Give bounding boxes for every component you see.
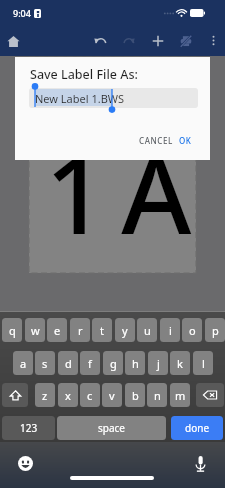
staticText: e	[54, 323, 61, 338]
staticText: done	[185, 421, 210, 435]
staticText: o	[189, 323, 196, 338]
button[interactable]: y	[115, 318, 135, 342]
button[interactable]: a	[13, 351, 33, 375]
button[interactable]: r	[70, 318, 90, 342]
staticText: h	[132, 356, 139, 371]
button[interactable]: s	[35, 351, 55, 375]
staticText: 9:04	[13, 7, 31, 19]
staticText: x	[65, 388, 71, 403]
button[interactable]: Home	[0, 28, 26, 54]
button[interactable]: j	[148, 351, 168, 375]
staticText: b	[132, 388, 139, 403]
staticText: i	[169, 323, 172, 338]
staticText: q	[9, 323, 16, 338]
staticText: y	[122, 323, 128, 338]
staticText: p	[212, 323, 219, 338]
button[interactable]: Emoji	[12, 450, 38, 476]
staticText: c	[87, 388, 93, 403]
button[interactable]: Add	[145, 25, 170, 56]
button[interactable]: v	[102, 383, 122, 407]
button[interactable]: h	[125, 351, 145, 375]
button[interactable]: space	[57, 416, 166, 440]
button[interactable]: p	[205, 318, 225, 342]
staticText: f	[88, 356, 92, 371]
button[interactable]: Voice input	[187, 450, 213, 476]
button[interactable]: Print disabled	[173, 25, 198, 56]
staticText: k	[177, 356, 183, 371]
staticText: r	[78, 323, 83, 338]
button[interactable]: Shift	[2, 383, 28, 407]
button[interactable]: More options	[201, 25, 225, 56]
button[interactable]: CANCEL	[138, 132, 174, 148]
button[interactable]: o	[182, 318, 202, 342]
button[interactable]: OK	[175, 132, 196, 148]
button[interactable]: e	[47, 318, 67, 342]
button[interactable]: c	[80, 383, 100, 407]
button[interactable]: Undo	[88, 25, 113, 56]
staticText: t	[100, 323, 104, 338]
button[interactable]: w	[25, 318, 45, 342]
staticText: w	[31, 323, 40, 338]
button[interactable]: u	[137, 318, 157, 342]
button[interactable]: f	[80, 351, 100, 375]
staticText: space	[98, 421, 125, 435]
staticText: m	[175, 388, 186, 403]
button[interactable]: l	[193, 351, 213, 375]
button[interactable]: 123	[2, 416, 55, 440]
button[interactable]: x	[58, 383, 78, 407]
button[interactable]: t	[92, 318, 112, 342]
staticText: CANCEL	[139, 135, 173, 146]
button[interactable]: b	[125, 383, 145, 407]
button[interactable]: q	[2, 318, 22, 342]
button[interactable]: n	[147, 383, 167, 407]
button[interactable]: g	[103, 351, 123, 375]
button[interactable]: d	[58, 351, 78, 375]
button[interactable]: Redo	[116, 25, 141, 56]
button[interactable]: Backspace	[196, 383, 224, 407]
staticText: 123	[20, 421, 38, 435]
staticText: OK	[179, 135, 192, 146]
button[interactable]: m	[170, 383, 190, 407]
button[interactable]: done	[171, 416, 223, 440]
staticText: 1A	[45, 120, 207, 266]
staticText: g	[110, 356, 117, 371]
button[interactable]: k	[170, 351, 190, 375]
staticText: New Label 1.BWS	[35, 91, 125, 106]
button[interactable]: i	[160, 318, 180, 342]
staticText: z	[42, 388, 48, 403]
staticText: a	[20, 356, 27, 371]
staticText: u	[144, 323, 151, 338]
staticText: v	[109, 388, 115, 403]
staticText: s	[42, 356, 48, 371]
staticText: Save Label File As:	[30, 66, 138, 83]
staticText: l	[202, 356, 205, 371]
staticText: d	[65, 356, 72, 371]
staticText: j	[157, 356, 160, 371]
button[interactable]: z	[35, 383, 55, 407]
staticText: n	[154, 388, 161, 403]
